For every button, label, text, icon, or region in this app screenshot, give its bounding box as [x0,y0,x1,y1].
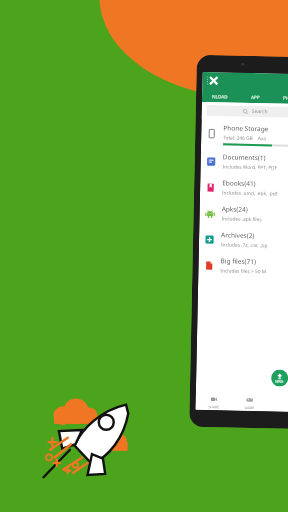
staticText: Includes files > 50 M [220,267,266,275]
staticText: Big files(71) [220,256,257,266]
staticText: Total: 246 GB Ava [223,134,266,142]
staticText: Archives(2) [221,230,255,240]
button[interactable]: Ebooks(41) [200,174,288,202]
staticText: Ebooks(41) [222,178,256,188]
staticText: NLOAD [212,93,228,99]
staticText: Includes .7z, .rar, .zip [221,241,268,249]
button[interactable]: Big files(71) [198,252,288,280]
staticText: Documents(1) [223,152,266,162]
button[interactable]: Documents(1) [200,148,288,176]
staticText: Phone Storage [223,123,268,133]
staticText: SEND [275,379,284,384]
staticText: Includes Word, PPT, PDF [222,163,278,172]
button[interactable]: Search [207,105,288,118]
button[interactable]: PHOTO [273,90,288,104]
staticText: Includes .umd, .ebk, .pdf [222,189,278,198]
button[interactable]: NLOAD [202,89,238,103]
button[interactable]: Apks(24) [199,200,288,228]
staticText: PHOTO [283,95,288,101]
button[interactable]: Send [271,369,288,387]
staticText: APP [251,94,260,100]
button[interactable]: Phone Storage [201,119,288,150]
staticText: Apks(24) [222,204,249,214]
button[interactable]: SHARE [195,393,232,411]
staticText: Search [252,108,268,115]
staticText: GAME [244,405,255,410]
button[interactable]: GAME [231,394,267,411]
button[interactable]: Archives(2) [199,226,288,254]
staticText: Includes .apk files [221,215,262,223]
staticText: SHARE [208,404,220,409]
button[interactable]: APP [238,90,273,103]
